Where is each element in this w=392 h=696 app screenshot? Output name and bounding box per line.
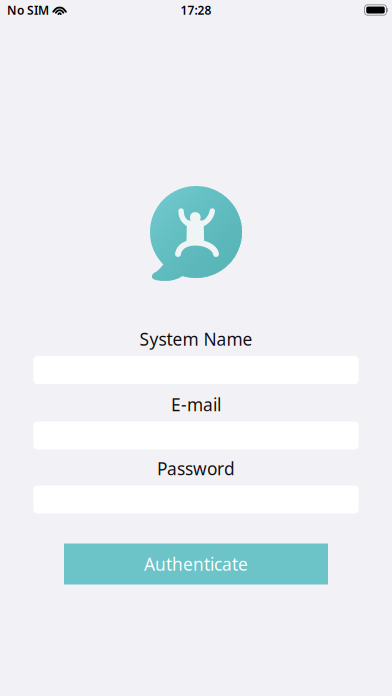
- staticText: 17:28: [180, 2, 211, 18]
- button[interactable]: Authenticate: [64, 543, 328, 584]
- staticText: System Name: [139, 327, 252, 350]
- staticText: E-mail: [171, 393, 221, 416]
- staticText: No SIM: [7, 2, 49, 18]
- staticText: Password: [157, 457, 235, 480]
- staticText: Authenticate: [144, 552, 248, 575]
